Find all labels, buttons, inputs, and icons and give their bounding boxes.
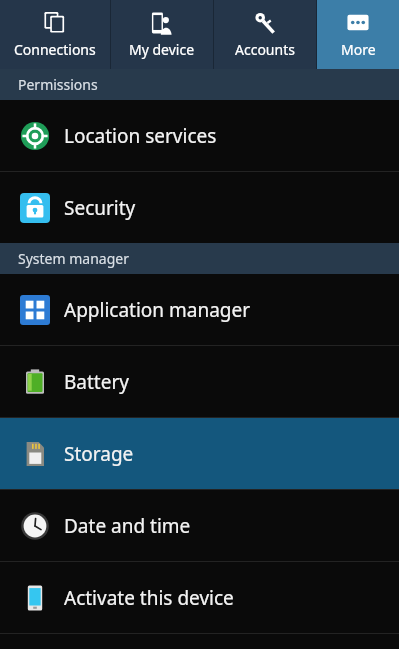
staticText: More xyxy=(341,40,376,59)
other: My device xyxy=(150,11,174,35)
staticText: Storage xyxy=(64,441,134,467)
staticText: Accounts xyxy=(235,40,295,59)
button[interactable]: Date and time xyxy=(0,490,399,561)
button[interactable]: Connections xyxy=(0,0,110,69)
button[interactable]: Battery xyxy=(0,346,399,417)
other: Accounts xyxy=(253,11,277,35)
other: More xyxy=(346,11,370,35)
staticText: Battery xyxy=(64,369,129,395)
staticText: Application manager xyxy=(64,297,251,323)
staticText: Permissions xyxy=(18,75,98,94)
staticText: Connections xyxy=(14,40,96,59)
button[interactable]: Location services xyxy=(0,100,399,171)
button[interactable]: Accounts xyxy=(214,0,316,69)
staticText: Activate this device xyxy=(64,585,234,611)
staticText: Security xyxy=(64,195,136,221)
staticText: System manager xyxy=(18,249,129,268)
button[interactable]: Application manager xyxy=(0,274,399,345)
button[interactable]: Activate this device xyxy=(0,562,399,633)
button[interactable]: My device xyxy=(111,0,213,69)
staticText: Date and time xyxy=(64,513,191,539)
button[interactable]: Storage xyxy=(0,418,399,489)
button[interactable]: More xyxy=(317,0,399,69)
other: Connections xyxy=(43,11,67,35)
staticText: Location services xyxy=(64,123,217,149)
button[interactable]: Security xyxy=(0,172,399,243)
staticText: My device xyxy=(129,40,195,59)
